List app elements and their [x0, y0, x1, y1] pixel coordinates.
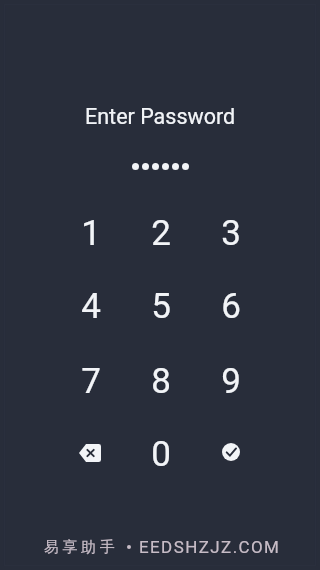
- button[interactable]: 0: [126, 418, 196, 491]
- button[interactable]: 9: [196, 345, 266, 418]
- staticText: 6: [221, 286, 241, 327]
- button[interactable]: Backspace: [55, 416, 125, 489]
- button[interactable]: 1: [56, 197, 126, 270]
- staticText: 3: [221, 213, 241, 254]
- button[interactable]: [132, 163, 139, 170]
- button[interactable]: 5: [126, 270, 196, 343]
- staticText: 0: [151, 434, 171, 475]
- staticText: 4: [81, 286, 101, 327]
- button[interactable]: 8: [126, 345, 196, 418]
- button[interactable]: [142, 163, 149, 170]
- button[interactable]: 2: [126, 197, 196, 270]
- button[interactable]: 3: [196, 197, 266, 270]
- button[interactable]: 4: [56, 270, 126, 343]
- staticText: 7: [81, 361, 101, 402]
- staticText: Enter Password: [85, 104, 236, 129]
- button[interactable]: 6: [196, 270, 266, 343]
- staticText: EEDSHZJZ.COM: [139, 537, 281, 557]
- staticText: 易享助手: [44, 538, 119, 557]
- button[interactable]: [152, 163, 159, 170]
- button[interactable]: 7: [56, 345, 126, 418]
- staticText: 8: [151, 361, 171, 402]
- button[interactable]: [162, 163, 169, 170]
- staticText: 2: [151, 213, 171, 254]
- button[interactable]: [172, 163, 179, 170]
- staticText: 9: [221, 361, 241, 402]
- button[interactable]: [182, 163, 189, 170]
- button[interactable]: Confirm: [196, 415, 266, 488]
- staticText: 5: [151, 286, 171, 327]
- staticText: 1: [81, 213, 101, 254]
